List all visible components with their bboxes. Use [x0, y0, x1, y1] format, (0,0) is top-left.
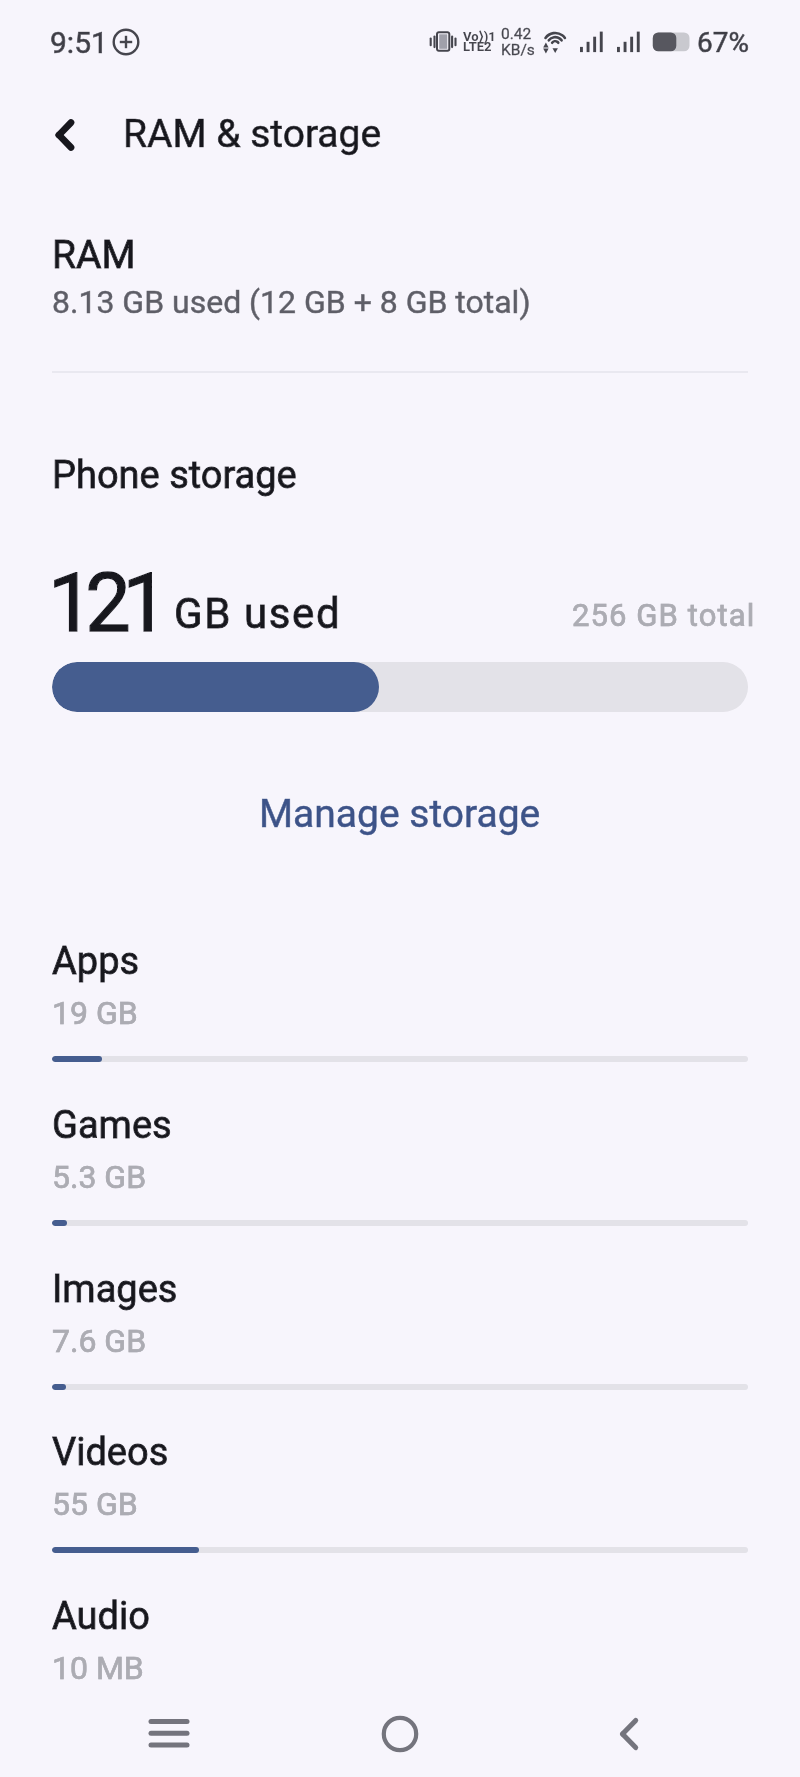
staticText: RAM [52, 232, 136, 278]
staticText: GB used [174, 589, 342, 638]
staticText: Images [52, 1267, 178, 1312]
staticText: KB/s [501, 41, 535, 59]
staticText: 7.6 GB [52, 1322, 147, 1360]
staticText: 121 [48, 556, 160, 651]
staticText: 67% [697, 26, 749, 59]
button[interactable]: Navigate back [36, 106, 94, 164]
staticText: Games [52, 1103, 172, 1148]
staticText: Vo⟩)1 [463, 29, 496, 44]
staticText: RAM & storage [123, 111, 382, 157]
staticText: 256 GB total [572, 597, 756, 633]
button[interactable]: Recent apps [121, 1690, 217, 1777]
staticText: 55 GB [52, 1485, 138, 1523]
staticText: 10 MB [52, 1649, 144, 1687]
staticText: Phone storage [52, 453, 297, 498]
staticText: Audio [52, 1594, 150, 1639]
staticText: 9:51 [50, 25, 108, 60]
staticText: KB/s [501, 41, 535, 59]
button[interactable]: Audio [0, 1576, 800, 1726]
button[interactable]: Manage storage [233, 779, 567, 849]
staticText: 10 MB [52, 1649, 144, 1687]
staticText: 8.13 GB used (12 GB + 8 GB total) [52, 283, 531, 321]
button[interactable]: Games [0, 1085, 800, 1235]
staticText: Images [52, 1267, 178, 1312]
staticText: Games [52, 1103, 172, 1148]
button[interactable]: Back [581, 1690, 677, 1777]
staticText: 121 [48, 556, 160, 651]
button[interactable]: Videos [0, 1412, 800, 1562]
staticText: 5.3 GB [52, 1158, 147, 1196]
staticText: Manage storage [259, 791, 541, 837]
staticText: 8.13 GB used (12 GB + 8 GB total) [52, 283, 531, 321]
staticText: 19 GB [52, 994, 138, 1032]
staticText: 67% [697, 26, 749, 59]
button[interactable]: RAM [0, 215, 800, 347]
staticText: Apps [52, 939, 140, 984]
staticText: RAM [52, 232, 136, 278]
staticText: Audio [52, 1594, 150, 1639]
staticText: Phone storage [52, 453, 297, 498]
button[interactable]: Apps [0, 921, 800, 1071]
staticText: Videos [52, 1430, 169, 1475]
staticText: 19 GB [52, 994, 138, 1032]
button[interactable]: Images [0, 1249, 800, 1399]
staticText: Videos [52, 1430, 169, 1475]
staticText: 0.42 [501, 25, 532, 43]
staticText: 256 GB total [572, 597, 756, 633]
staticText: 0.42 [501, 25, 532, 43]
staticText: 55 GB [52, 1485, 138, 1523]
button[interactable]: Home [352, 1690, 448, 1777]
button[interactable]: RAM & storage [104, 100, 404, 172]
staticText: 5.3 GB [52, 1158, 147, 1196]
staticText: Manage storage [259, 791, 541, 837]
staticText: GB used [174, 589, 342, 638]
staticText: Apps [52, 939, 140, 984]
staticText: LTE2 [463, 39, 492, 54]
staticText: 9:51 [50, 25, 108, 60]
staticText: 7.6 GB [52, 1322, 147, 1360]
staticText: RAM & storage [123, 111, 382, 157]
